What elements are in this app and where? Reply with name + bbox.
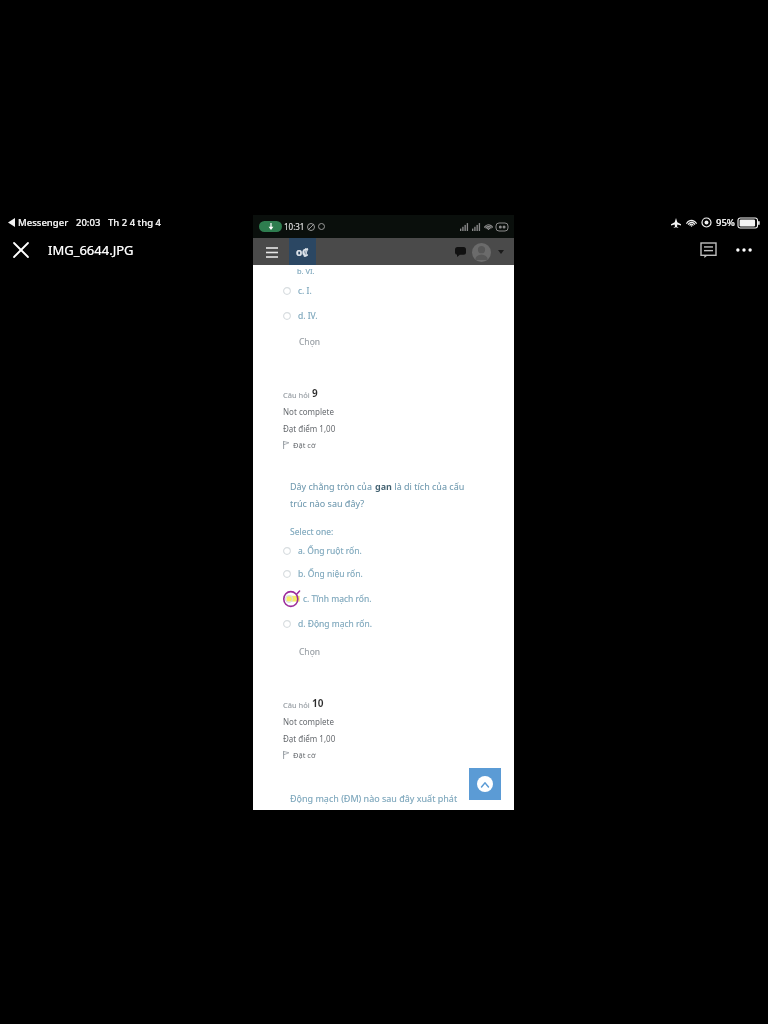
button[interactable]: d. IV. (283, 310, 514, 322)
button[interactable]: b. Ống niệu rốn. (283, 568, 514, 580)
button[interactable]: c. Tĩnh mạch rốn. (283, 591, 514, 607)
button[interactable]: Đặt cờ (283, 440, 316, 450)
staticText: 10 (312, 696, 324, 710)
staticText: Dây chằng tròn của (290, 480, 375, 492)
staticText: Đạt điểm 1,00 (283, 733, 336, 744)
staticText: 95% (716, 216, 735, 229)
button[interactable]: Chọn (299, 646, 321, 658)
staticText: là di tích của cấu (392, 480, 465, 492)
staticText: d. Động mạch rốn. (298, 618, 373, 630)
button[interactable]: Menu (261, 241, 283, 263)
staticText: Động mạch (ĐM) nào sau đây xuất phát (290, 792, 458, 804)
staticText: 20:03 (76, 216, 101, 229)
button[interactable]: User menu (494, 245, 508, 259)
button[interactable]: Site home (289, 238, 316, 265)
staticText: Đặt cờ (293, 750, 316, 760)
staticText: b. VI. (297, 266, 315, 276)
staticText: Not complete (283, 716, 334, 727)
staticText: a. Ống ruột rốn. (298, 545, 362, 557)
staticText: Messenger (18, 216, 69, 229)
staticText: trúc nào sau đây? (290, 497, 365, 509)
button[interactable]: c. I. (283, 285, 514, 297)
button[interactable]: Chọn (299, 336, 321, 348)
staticText: 9 (312, 386, 318, 400)
staticText: Đặt cờ (293, 440, 316, 450)
button[interactable]: Profile (472, 243, 491, 262)
staticText: Câu hỏi (283, 390, 312, 400)
staticText: Đạt điểm 1,00 (283, 423, 336, 434)
staticText: Not complete (283, 406, 334, 417)
button[interactable]: Scroll to top (469, 768, 501, 800)
staticText: 10:31 (284, 221, 305, 232)
button[interactable]: Close (0, 230, 42, 270)
button[interactable]: d. Động mạch rốn. (283, 618, 514, 630)
staticText: Chọn (299, 336, 321, 348)
button[interactable]: a. Ống ruột rốn. (283, 545, 514, 557)
staticText: Th 2 4 thg 4 (108, 216, 161, 229)
staticText: Câu hỏi (283, 700, 312, 710)
staticText: d. IV. (298, 310, 318, 322)
staticText: o₡ (296, 245, 309, 259)
button[interactable]: Messages (450, 242, 470, 262)
staticText: Chọn (299, 646, 321, 658)
button[interactable]: More options (726, 232, 762, 268)
staticText: gan (375, 480, 392, 492)
staticText: c. I. (298, 285, 312, 297)
button[interactable]: Đặt cờ (283, 750, 316, 760)
staticText: c. Tĩnh mạch rốn. (303, 593, 372, 605)
staticText: IMG_6644.JPG (48, 241, 134, 259)
staticText: b. Ống niệu rốn. (298, 568, 363, 580)
button[interactable]: Comment (690, 232, 726, 268)
staticText: Select one: (290, 526, 334, 538)
